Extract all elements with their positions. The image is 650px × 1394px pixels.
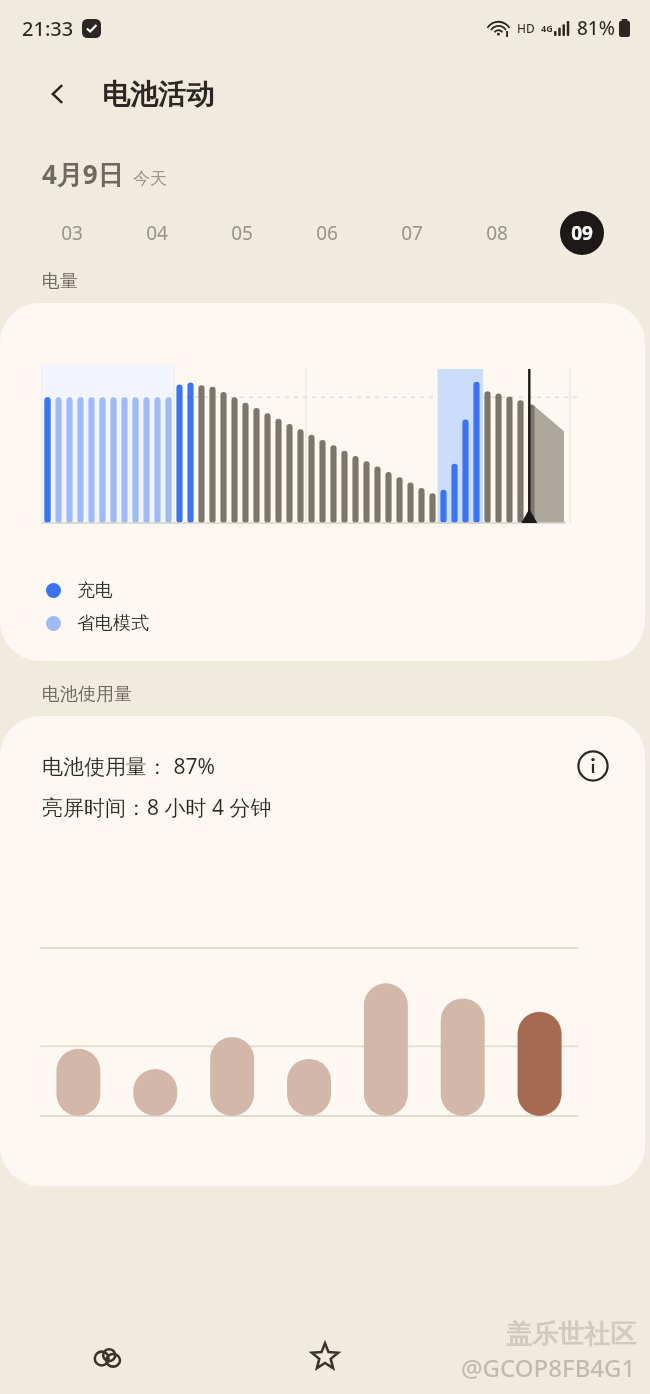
staticText: 03 (61, 220, 83, 246)
button[interactable]: Cloud (0, 1320, 216, 1394)
staticText: 06 (316, 220, 338, 246)
button[interactable]: 08 (454, 210, 539, 256)
staticText: 05 (231, 220, 253, 246)
staticText: 充电 (77, 579, 113, 602)
button[interactable]: 05 (199, 210, 284, 256)
staticText: HD (517, 20, 535, 36)
staticText: 电量 (42, 270, 78, 293)
button[interactable]: 09 (539, 210, 624, 256)
button[interactable]: Back (36, 72, 80, 116)
staticText: 21:33 (22, 15, 74, 42)
button[interactable]: 电池使用量： 87% (0, 716, 645, 1186)
button[interactable]: Favorites (216, 1320, 433, 1394)
staticText: 盖乐世社区 (506, 1318, 636, 1351)
button[interactable]: 07 (369, 210, 454, 256)
staticText: 省电模式 (77, 612, 149, 635)
button[interactable]: Recents (433, 1320, 650, 1394)
button[interactable]: Info (571, 744, 615, 788)
staticText: 今天 (133, 168, 167, 189)
staticText: 4G (541, 22, 553, 34)
staticText: 电池活动 (102, 77, 214, 112)
button[interactable]: 04 (114, 210, 199, 256)
staticText: 04 (146, 220, 168, 246)
staticText: 电池使用量： 87% (42, 752, 215, 781)
staticText: 电池使用量 (42, 683, 132, 706)
button[interactable]: 充电 (0, 303, 645, 661)
button[interactable]: 03 (30, 210, 114, 256)
staticText: 亮屏时间：8 小时 4 分钟 (42, 793, 272, 822)
button[interactable]: 06 (284, 210, 369, 256)
staticText: 09 (571, 220, 593, 246)
staticText: 81% (577, 15, 615, 41)
staticText: @GCOP8FB4G1 (461, 1351, 636, 1384)
staticText: 08 (486, 220, 508, 246)
staticText: 07 (401, 220, 423, 246)
staticText: 4月9日 (42, 156, 124, 192)
